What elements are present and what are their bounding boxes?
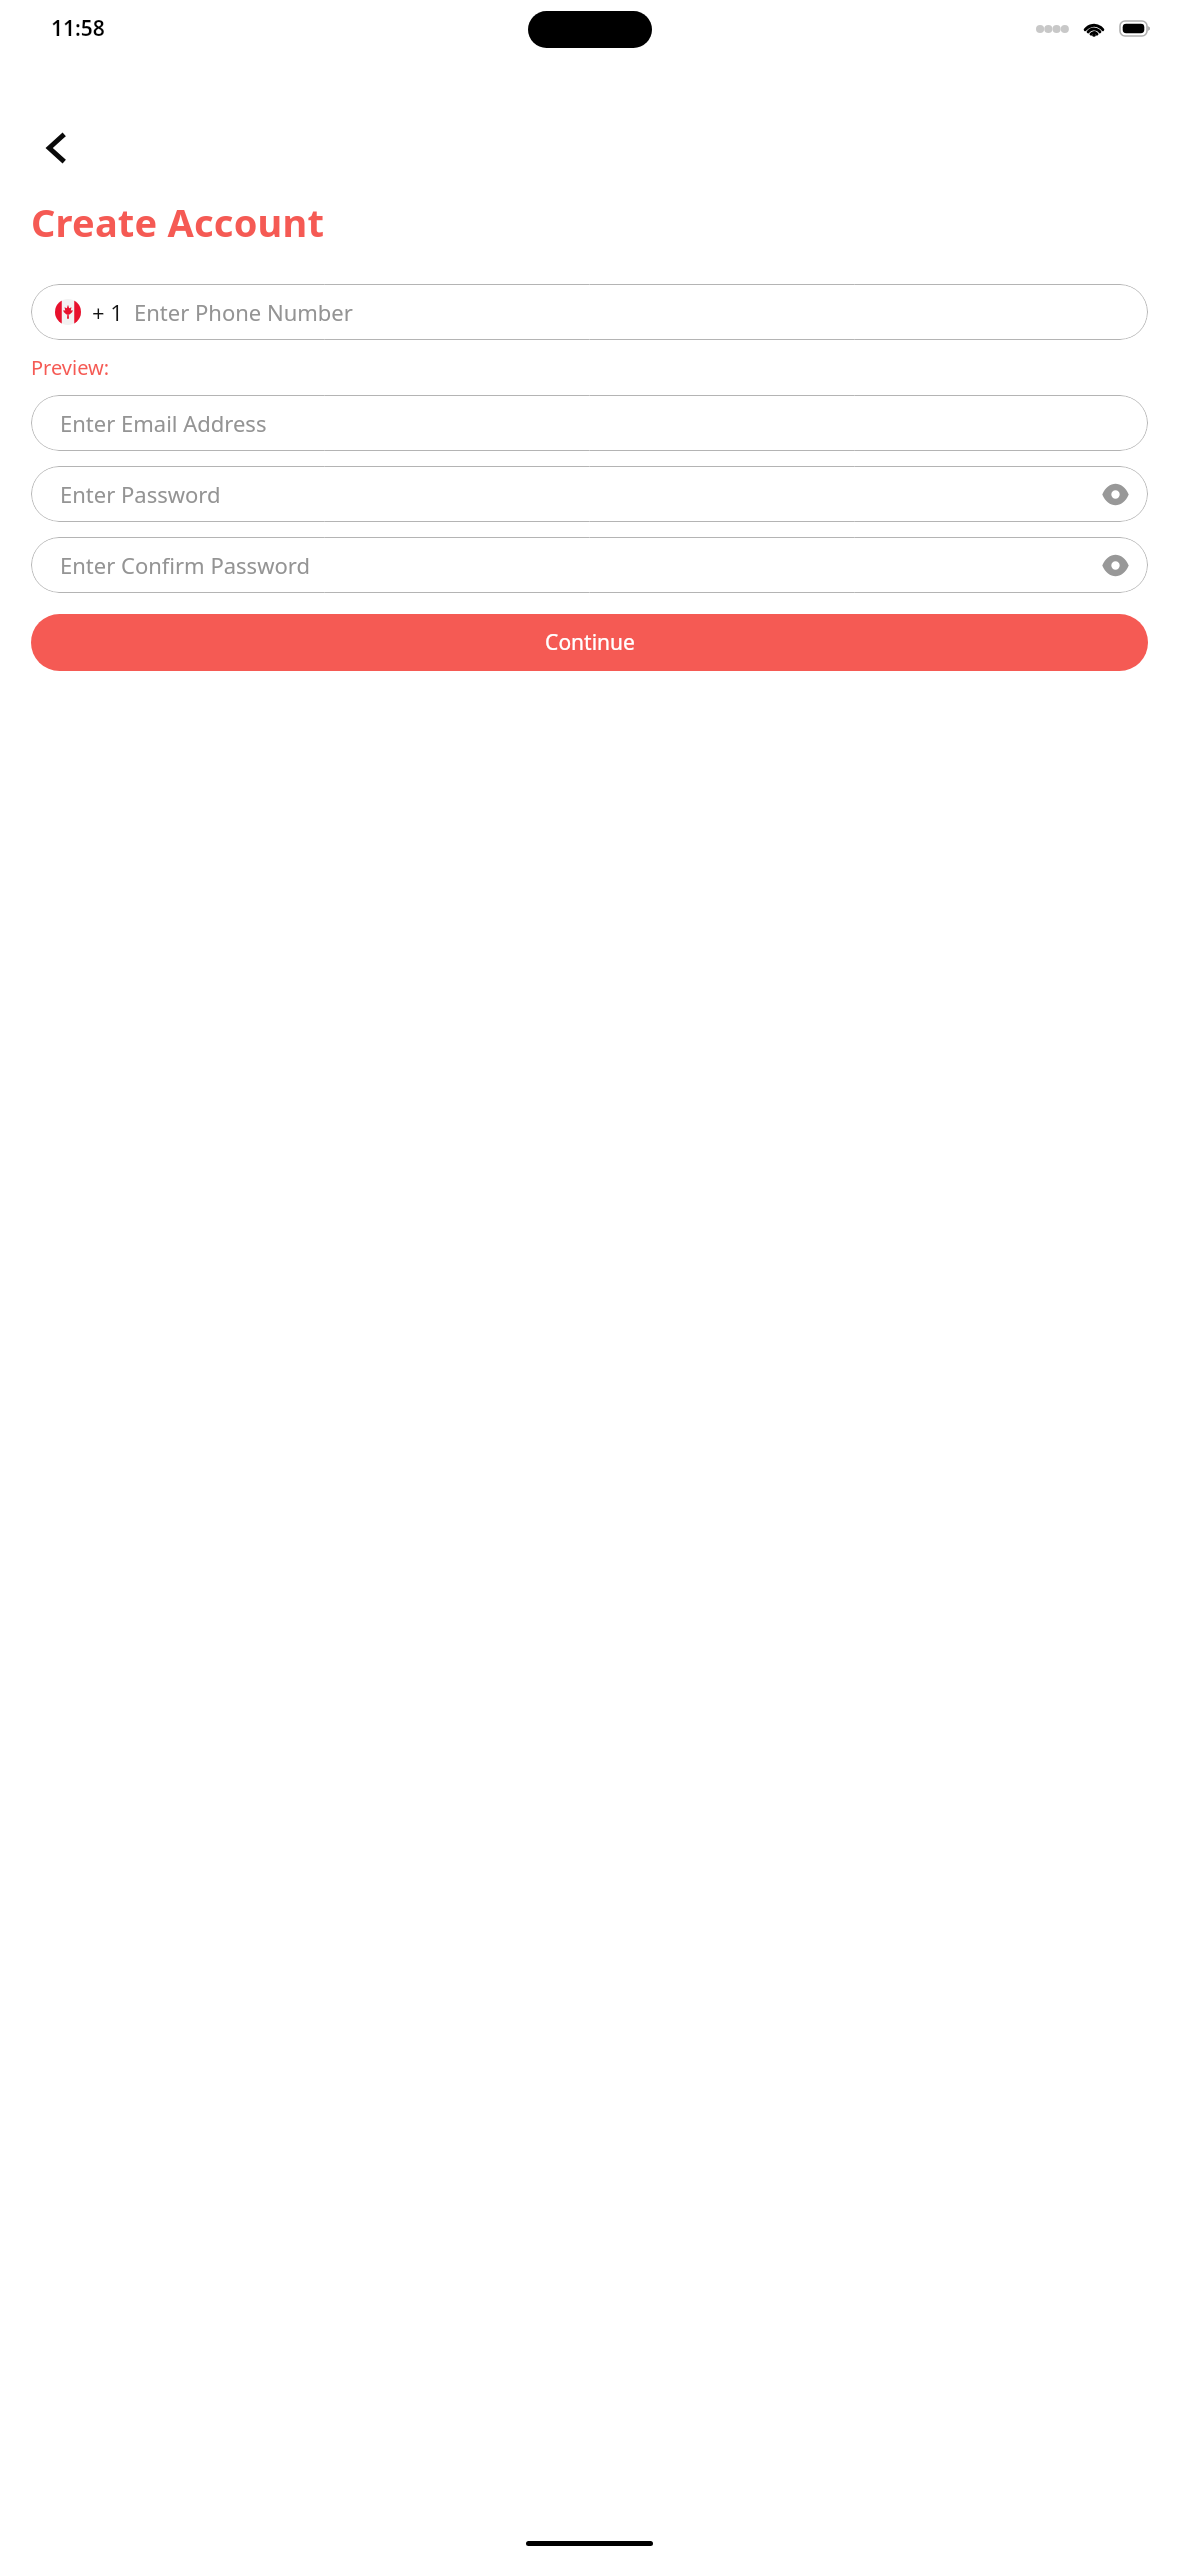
staticText: Enter Confirm Password — [60, 550, 310, 580]
button[interactable]: Continue — [31, 614, 1148, 671]
staticText: Preview: — [31, 354, 110, 381]
button[interactable]: + 1 — [31, 284, 1148, 340]
staticText: + 1 — [92, 297, 123, 327]
button[interactable]: Enter Email Address — [31, 395, 1148, 451]
staticText: Continue — [545, 628, 635, 657]
staticText: 11:58 — [51, 14, 105, 43]
button[interactable]: Back — [31, 122, 83, 174]
button[interactable]: Enter Password — [31, 466, 1148, 522]
staticText: Enter Email Address — [60, 408, 267, 438]
staticText: Enter Password — [60, 479, 221, 509]
staticText: Create Account — [31, 196, 325, 248]
staticText: Enter Phone Number — [134, 297, 353, 327]
button[interactable]: Show password — [1091, 541, 1139, 589]
button[interactable]: Enter Confirm Password — [31, 537, 1148, 593]
button[interactable]: Show password — [1091, 470, 1139, 518]
